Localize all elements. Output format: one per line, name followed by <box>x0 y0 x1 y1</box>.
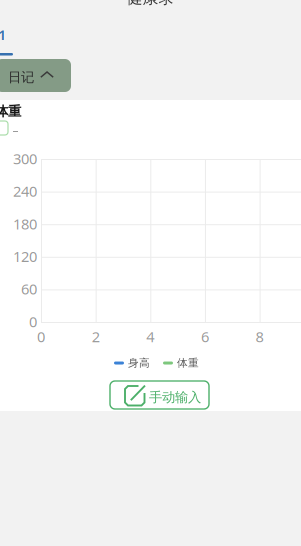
staticText: 300 <box>13 149 37 168</box>
staticText: 日记 <box>8 69 34 85</box>
staticText: 1 <box>0 25 6 44</box>
staticText: 体重 <box>177 356 199 369</box>
staticText: 体重 <box>0 103 21 119</box>
staticText: 6 <box>201 327 209 346</box>
staticText: 手动输入 <box>149 389 201 405</box>
staticText: 120 <box>13 247 37 266</box>
staticText: 身高 <box>128 356 150 369</box>
staticText: 240 <box>13 181 37 201</box>
staticText: 4 <box>146 327 154 346</box>
staticText: 健康录 <box>126 0 174 8</box>
button[interactable]: 手动输入 <box>110 381 209 409</box>
staticText: 180 <box>13 214 37 233</box>
staticText: 8 <box>256 327 264 346</box>
button[interactable]: 日记 <box>0 59 71 92</box>
staticText: 2 <box>92 327 100 346</box>
staticText: 0 <box>37 327 45 346</box>
staticText: 0 <box>29 312 37 331</box>
staticText: 60 <box>21 279 37 299</box>
